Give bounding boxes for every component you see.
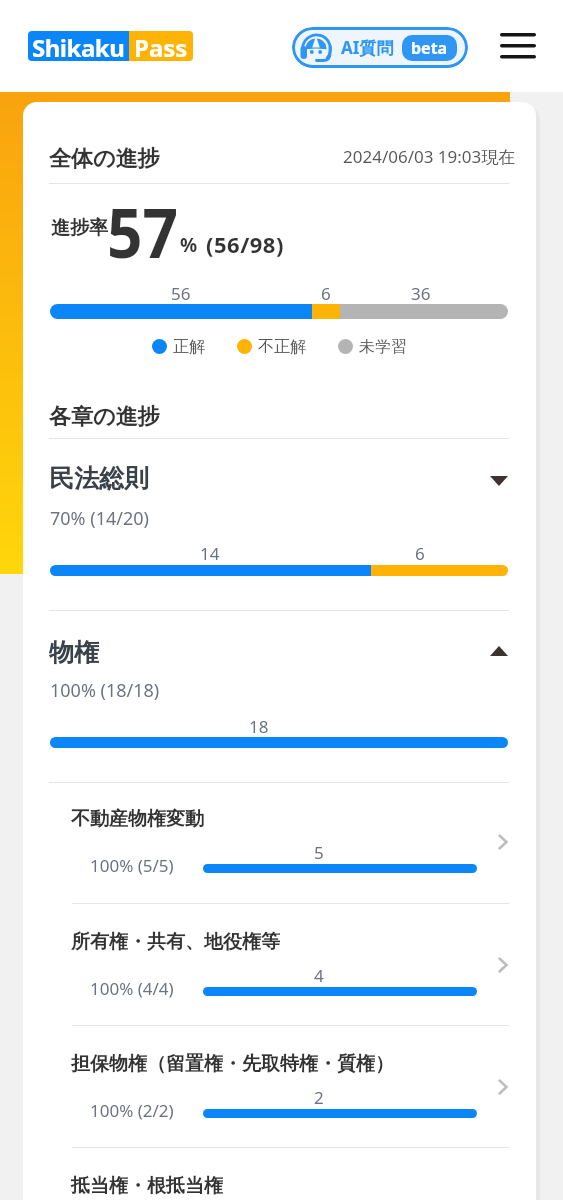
button[interactable] xyxy=(23,1153,536,1200)
button[interactable] xyxy=(23,440,536,500)
staticText: 4 xyxy=(314,964,324,987)
staticText: Shikaku xyxy=(32,31,125,61)
staticText: (56/98) xyxy=(206,229,284,259)
button[interactable] xyxy=(23,909,536,1019)
staticText: 所有権・共有、地役権等 xyxy=(71,930,280,954)
staticText: 進捗率 xyxy=(51,216,108,240)
staticText: 2024/06/03 19:03現在 xyxy=(343,145,516,168)
staticText: 6 xyxy=(415,542,425,565)
staticText: 36 xyxy=(411,282,431,305)
button[interactable] xyxy=(23,615,536,675)
staticText: 70% (14/20) xyxy=(50,506,149,531)
staticText: 全体の進捗 xyxy=(49,145,160,173)
staticText: 未学習 xyxy=(359,337,407,357)
button[interactable] xyxy=(494,26,542,66)
staticText: 各章の進捗 xyxy=(49,403,160,431)
staticText: 100% (4/4) xyxy=(90,977,174,1000)
staticText: 担保物権（留置権・先取特権・質権） xyxy=(71,1052,394,1076)
staticText: 14 xyxy=(200,542,220,565)
staticText: Pass xyxy=(134,31,188,61)
staticText: beta xyxy=(411,37,448,59)
staticText: 56 xyxy=(171,282,191,305)
staticText: 抵当権・根抵当権 xyxy=(71,1174,223,1198)
staticText: 100% (18/18) xyxy=(50,678,160,703)
staticText: 6 xyxy=(321,282,331,305)
staticText: 5 xyxy=(314,841,324,864)
staticText: 100% (5/5) xyxy=(90,854,174,877)
button[interactable]: AI質問 xyxy=(292,27,468,68)
staticText: 物権 xyxy=(49,637,99,668)
button[interactable] xyxy=(23,1031,536,1141)
staticText: AI質問 xyxy=(341,36,394,59)
staticText: 2 xyxy=(314,1086,324,1109)
staticText: 正解 xyxy=(173,337,205,357)
button[interactable] xyxy=(23,786,536,896)
button[interactable]: Shikaku xyxy=(28,31,193,61)
staticText: 57 xyxy=(107,184,178,274)
staticText: % xyxy=(180,232,198,258)
staticText: 不動産物権変動 xyxy=(71,807,204,831)
staticText: 100% (2/2) xyxy=(90,1099,174,1122)
staticText: 18 xyxy=(249,715,269,738)
staticText: 民法総則 xyxy=(49,463,149,494)
staticText: 不正解 xyxy=(258,337,306,357)
